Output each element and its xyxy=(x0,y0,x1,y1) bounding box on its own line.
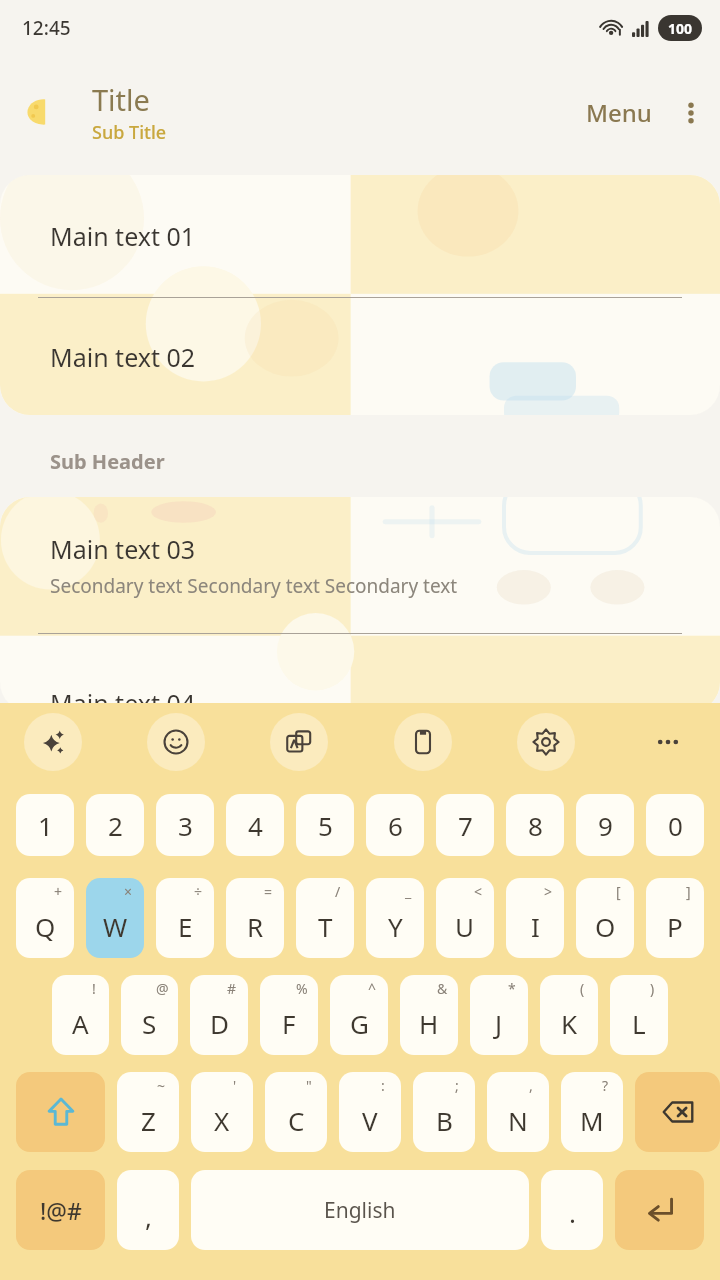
button[interactable]: Main text 03 xyxy=(0,497,720,633)
button[interactable]: . xyxy=(541,1170,603,1250)
button[interactable]: Navigate up xyxy=(6,80,70,144)
staticText: , xyxy=(529,1076,533,1095)
staticText: " xyxy=(306,1076,312,1095)
button[interactable]: ! xyxy=(52,975,109,1055)
button[interactable]: 6 xyxy=(366,794,424,856)
button[interactable]: Clipboard xyxy=(394,713,452,771)
button[interactable]: [ xyxy=(576,878,634,958)
staticText: Title xyxy=(92,80,150,119)
staticText: ~ xyxy=(157,1076,166,1095)
button[interactable]: Main text 04 xyxy=(0,634,720,712)
button[interactable]: AI suggestions xyxy=(24,713,82,771)
button[interactable]: 2 xyxy=(86,794,144,856)
button[interactable]: 0 xyxy=(646,794,704,856)
staticText: D xyxy=(210,1006,229,1041)
button[interactable]: Menu xyxy=(576,80,662,145)
button[interactable]: Main text 02 xyxy=(0,298,720,415)
button[interactable]: Keyboard settings xyxy=(517,713,575,771)
button[interactable]: % xyxy=(260,975,318,1055)
button[interactable]: ( xyxy=(540,975,598,1055)
button[interactable]: ^ xyxy=(330,975,388,1055)
staticText: Main text 04 xyxy=(50,686,196,712)
button[interactable]: 1 xyxy=(16,794,74,856)
button[interactable]: ] xyxy=(646,878,704,958)
staticText: O xyxy=(595,909,616,944)
button[interactable]: 9 xyxy=(576,794,634,856)
staticText: F xyxy=(282,1006,296,1041)
staticText: + xyxy=(54,882,63,901)
staticText: W xyxy=(103,909,128,944)
staticText: * xyxy=(508,979,516,998)
button[interactable]: Emoji xyxy=(147,713,205,771)
staticText: _ xyxy=(405,882,412,901)
staticText: / xyxy=(335,882,341,901)
button[interactable]: Main text 01 xyxy=(0,175,720,297)
button[interactable]: = xyxy=(226,878,284,958)
staticText: 3 xyxy=(178,808,193,843)
button[interactable]: ÷ xyxy=(156,878,214,958)
staticText: M xyxy=(580,1103,604,1138)
button[interactable]: 3 xyxy=(156,794,214,856)
button[interactable]: 4 xyxy=(226,794,284,856)
staticText: Main text 03 xyxy=(50,532,196,566)
button[interactable]: ? xyxy=(561,1072,623,1152)
staticText: Sub Title xyxy=(92,120,167,145)
button[interactable]: 8 xyxy=(506,794,564,856)
staticText: H xyxy=(419,1006,439,1041)
staticText: X xyxy=(214,1103,230,1138)
button[interactable]: , xyxy=(487,1072,549,1152)
staticText: ' xyxy=(233,1076,237,1095)
button[interactable]: 7 xyxy=(436,794,494,856)
button[interactable]: & xyxy=(400,975,458,1055)
button[interactable]: ' xyxy=(191,1072,253,1152)
staticText: ^ xyxy=(368,979,377,998)
staticText: & xyxy=(437,979,448,998)
staticText: 0 xyxy=(668,808,683,843)
button[interactable]: _ xyxy=(366,878,424,958)
staticText: 12:45 xyxy=(22,15,71,41)
staticText: ÷ xyxy=(194,882,203,901)
staticText: > xyxy=(544,882,553,901)
button[interactable]: / xyxy=(296,878,354,958)
staticText: Secondary text Secondary text Secondary … xyxy=(50,573,458,599)
staticText: ? xyxy=(602,1076,609,1095)
staticText: , xyxy=(145,1199,152,1234)
staticText: 6 xyxy=(388,808,403,843)
staticText: 5 xyxy=(318,808,333,843)
button[interactable]: : xyxy=(339,1072,401,1152)
button[interactable]: > xyxy=(506,878,564,958)
staticText: E xyxy=(178,909,193,944)
button[interactable]: + xyxy=(16,878,74,958)
button[interactable]: ; xyxy=(413,1072,475,1152)
button[interactable]: @ xyxy=(121,975,178,1055)
staticText: ] xyxy=(686,882,691,901)
button[interactable]: ) xyxy=(610,975,668,1055)
button[interactable]: " xyxy=(265,1072,327,1152)
button[interactable]: Translate xyxy=(270,713,328,771)
staticText: U xyxy=(455,909,475,944)
button[interactable]: * xyxy=(470,975,528,1055)
button[interactable]: Shift xyxy=(16,1072,105,1152)
staticText: English xyxy=(324,1196,396,1225)
staticText: N xyxy=(508,1103,528,1138)
staticText: 100 xyxy=(668,19,693,38)
staticText: G xyxy=(350,1006,369,1041)
button[interactable]: 5 xyxy=(296,794,354,856)
staticText: [ xyxy=(616,882,621,901)
staticText: T xyxy=(318,909,333,944)
staticText: ! xyxy=(92,979,96,998)
button[interactable]: × xyxy=(86,878,144,958)
button[interactable]: More keyboard options xyxy=(640,714,696,770)
button[interactable]: ~ xyxy=(117,1072,179,1152)
button[interactable]: English xyxy=(191,1170,529,1250)
staticText: Main text 02 xyxy=(50,340,196,374)
button[interactable]: More options xyxy=(662,84,720,142)
button[interactable]: !@# xyxy=(16,1170,105,1250)
button[interactable]: Backspace xyxy=(635,1072,720,1152)
button[interactable]: < xyxy=(436,878,494,958)
button[interactable]: # xyxy=(190,975,248,1055)
staticText: . xyxy=(569,1195,576,1230)
staticText: # xyxy=(227,979,237,998)
button[interactable]: Enter xyxy=(615,1170,704,1250)
button[interactable]: , xyxy=(117,1170,179,1250)
